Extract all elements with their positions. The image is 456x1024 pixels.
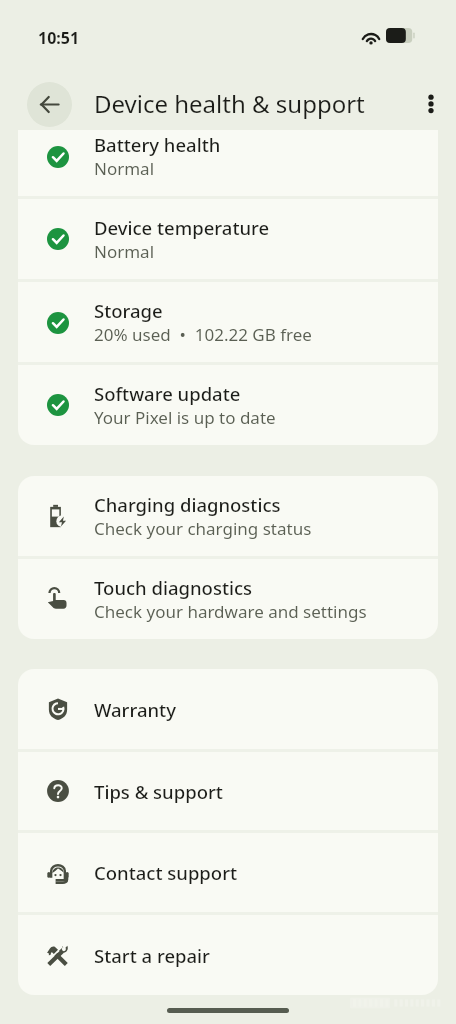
staticText: Check your hardware and settings [94, 600, 367, 623]
staticText: Touch diagnostics [94, 575, 253, 600]
button[interactable]: Tips & support [18, 752, 438, 830]
button[interactable]: Charging diagnostics [18, 476, 438, 556]
staticText: Tips & support [94, 779, 223, 804]
staticText: Warranty [94, 697, 176, 722]
staticText: Charging diagnostics [94, 492, 281, 517]
staticText: Battery health [94, 132, 221, 157]
button[interactable]: Back [27, 82, 72, 127]
staticText: 20% used • 102.22 GB free [94, 323, 312, 346]
staticText: Contact support [94, 860, 238, 885]
button[interactable]: Storage [18, 282, 438, 363]
button[interactable]: Start a repair [18, 915, 438, 995]
staticText: Check your charging status [94, 517, 312, 540]
button[interactable]: Device temperature [18, 199, 438, 279]
staticText: Normal [94, 157, 155, 180]
button[interactable]: Touch diagnostics [18, 559, 438, 639]
staticText: Your Pixel is up to date [94, 406, 276, 429]
button[interactable]: Battery health [18, 130, 438, 197]
button[interactable]: Warranty [18, 669, 438, 749]
staticText: Device temperature [94, 215, 270, 240]
staticText: Storage [94, 298, 163, 323]
button[interactable]: More options [411, 84, 451, 124]
button[interactable]: Contact support [18, 833, 438, 912]
staticText: Start a repair [94, 943, 210, 968]
staticText: 10:51 [38, 27, 80, 49]
staticText: Device health & support [94, 87, 365, 120]
staticText: Normal [94, 240, 155, 263]
button[interactable]: Software update [18, 365, 438, 445]
staticText: Software update [94, 381, 241, 406]
